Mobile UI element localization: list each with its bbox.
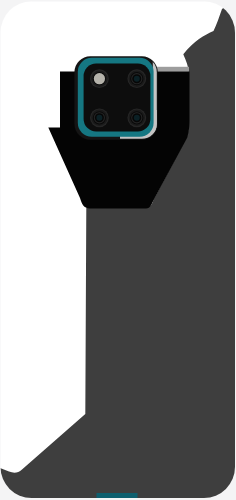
button[interactable]: Phone case product photo [0, 0, 236, 500]
